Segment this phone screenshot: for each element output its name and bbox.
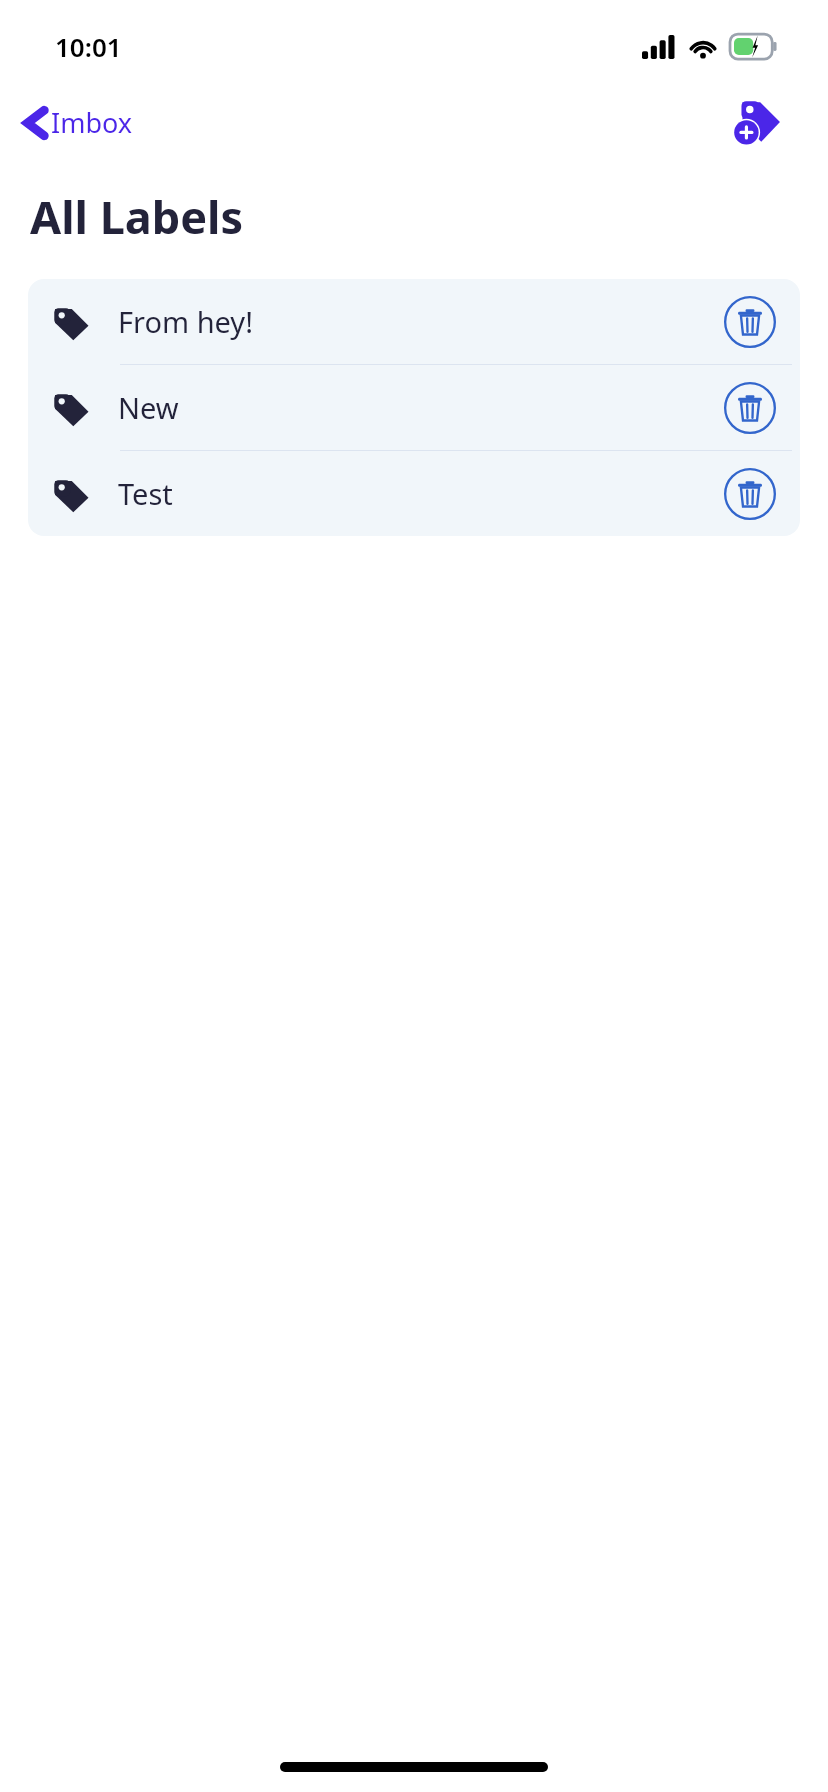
button[interactable]: From hey! [28,279,800,364]
button[interactable]: Delete label [722,294,778,350]
button[interactable]: Delete label [722,380,778,436]
staticText: Test [118,474,722,513]
staticText: Imbox [51,104,133,141]
button[interactable]: Add label [726,93,784,151]
staticText: New [118,388,722,427]
staticText: From hey! [118,302,722,341]
button[interactable]: Imbox [18,98,139,147]
staticText: 10:01 [55,29,122,64]
button[interactable]: Test [28,451,800,536]
button[interactable]: New [28,365,800,450]
staticText: All Labels [30,186,244,247]
button[interactable]: Delete label [722,466,778,522]
